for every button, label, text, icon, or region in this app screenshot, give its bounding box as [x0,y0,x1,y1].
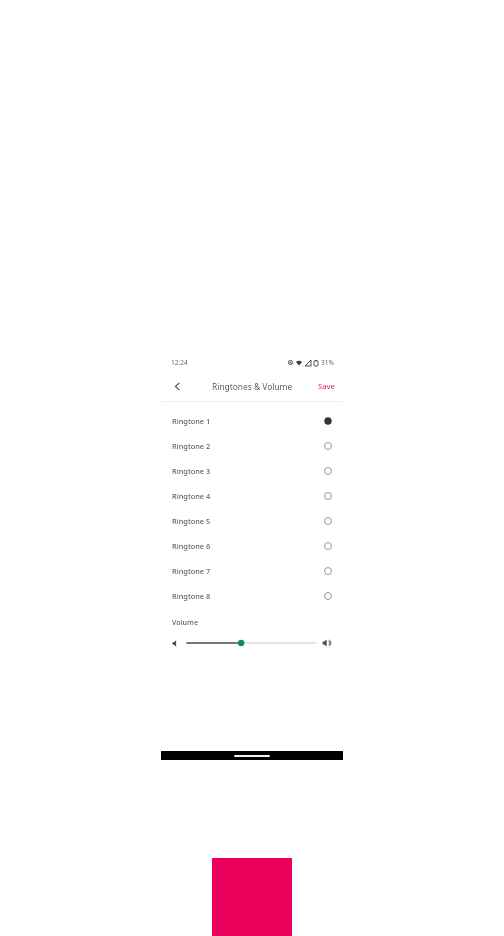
staticText: Ringtone 2 [172,441,324,451]
button[interactable]: Ringtone 8 [161,583,343,608]
button[interactable]: Ringtone 4 [161,483,343,508]
staticText: Ringtone 6 [172,541,324,551]
staticText: 31% [321,358,334,367]
button[interactable]: Ringtone 5 [161,508,343,533]
button[interactable]: Ringtone 1 [161,408,343,433]
staticText: Ringtone 3 [172,466,324,476]
staticText: Ringtone 1 [172,416,324,426]
staticText: Ringtone 5 [172,516,324,526]
staticText: 12:24 [171,358,188,367]
button[interactable]: Ringtone 3 [161,458,343,483]
button[interactable]: Ringtone 6 [161,533,343,558]
button[interactable]: Ringtone 7 [161,558,343,583]
staticText: Ringtones & Volume [212,381,293,392]
other: Mute [172,639,181,648]
button[interactable]: Ringtone 2 [161,433,343,458]
button[interactable]: Back [167,376,187,396]
staticText: Save [318,381,335,391]
staticText: Ringtone 4 [172,491,324,501]
staticText: Ringtone 7 [172,566,324,576]
staticText: Ringtone 8 [172,591,324,601]
other: Max volume [322,638,332,648]
button[interactable]: Save [318,381,335,391]
staticText: Volume [172,617,199,627]
